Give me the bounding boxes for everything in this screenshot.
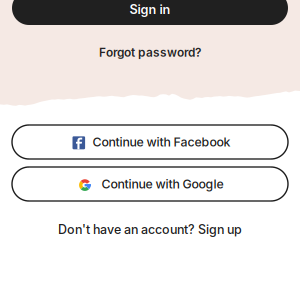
staticText: Forgot password? — [99, 45, 201, 60]
staticText: Sign in — [129, 2, 170, 17]
button[interactable]: Continue with Facebook — [12, 125, 288, 159]
button[interactable]: Sign in — [12, 0, 288, 25]
button[interactable]: Don't have an account? Sign up — [12, 221, 288, 237]
button[interactable]: Continue with Google — [12, 167, 288, 201]
staticText: Don't have an account? Sign up — [58, 222, 242, 237]
button[interactable]: Forgot password? — [12, 43, 288, 61]
staticText: Continue with Facebook — [92, 134, 230, 149]
staticText: Continue with Google — [101, 176, 223, 191]
